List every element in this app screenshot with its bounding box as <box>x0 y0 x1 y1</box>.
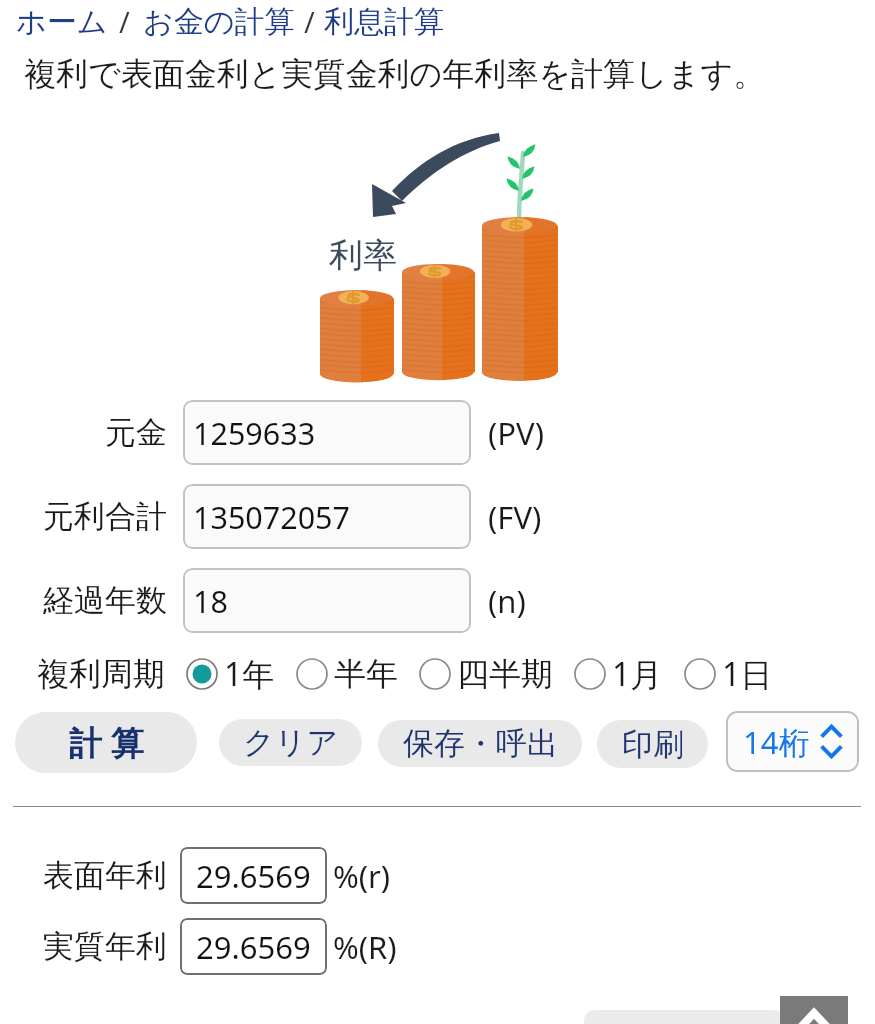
staticText: 四半期 <box>457 654 553 694</box>
button[interactable]: 135072057 <box>183 484 471 549</box>
button[interactable]: 1日 <box>684 652 773 696</box>
button[interactable]: 保存・呼出 <box>378 720 582 767</box>
staticText: 元金 <box>105 413 167 452</box>
staticText: 1年 <box>224 652 275 696</box>
button[interactable]: 印刷 <box>597 720 708 768</box>
staticText: %(R) <box>333 926 397 968</box>
button[interactable]: 1年 <box>186 652 275 696</box>
staticText: (PV) <box>488 412 544 454</box>
staticText: %(r) <box>333 855 391 897</box>
staticText: 1日 <box>722 652 773 696</box>
staticText: 印刷 <box>622 725 684 764</box>
button[interactable]: Scroll to top <box>780 996 848 1024</box>
staticText: 135072057 <box>193 496 351 538</box>
button[interactable]: 半年 <box>296 654 398 694</box>
button[interactable]: 四半期 <box>419 654 553 694</box>
staticText: 計 算 <box>69 720 144 765</box>
staticText: 1月 <box>612 652 663 696</box>
staticText: 半年 <box>334 654 398 694</box>
button[interactable]: 計 算 <box>15 712 197 773</box>
staticText: 18 <box>193 580 228 622</box>
staticText: 経過年数 <box>43 581 167 620</box>
staticText: 利率 <box>329 234 397 277</box>
button[interactable]: 1259633 <box>183 400 471 465</box>
staticText: 表面年利 <box>43 856 167 895</box>
staticText: クリア <box>243 723 339 762</box>
staticText: / <box>119 2 130 41</box>
button[interactable]: お金の計算 <box>143 3 295 41</box>
staticText: 利息計算 <box>324 3 444 41</box>
button[interactable]: クリア <box>219 719 362 766</box>
staticText: 元利合計 <box>43 497 167 536</box>
button[interactable]: 18 <box>183 568 471 633</box>
staticText: / <box>304 2 315 41</box>
staticText: 14桁 <box>743 721 810 763</box>
button[interactable]: 14桁 <box>726 711 859 772</box>
staticText: (FV) <box>488 496 542 538</box>
staticText: 29.6569 <box>196 855 311 897</box>
staticText: 29.6569 <box>196 926 311 968</box>
button[interactable]: ホーム <box>16 3 108 41</box>
staticText: 1259633 <box>193 412 316 454</box>
staticText: 保存・呼出 <box>403 724 558 763</box>
staticText: 複利で表面金利と実質金利の年利率を計算します。 <box>24 54 766 94</box>
button[interactable]: 1月 <box>574 652 663 696</box>
staticText: (n) <box>488 580 526 622</box>
staticText: 複利周期 <box>37 654 165 694</box>
staticText: 実質年利 <box>43 927 167 966</box>
